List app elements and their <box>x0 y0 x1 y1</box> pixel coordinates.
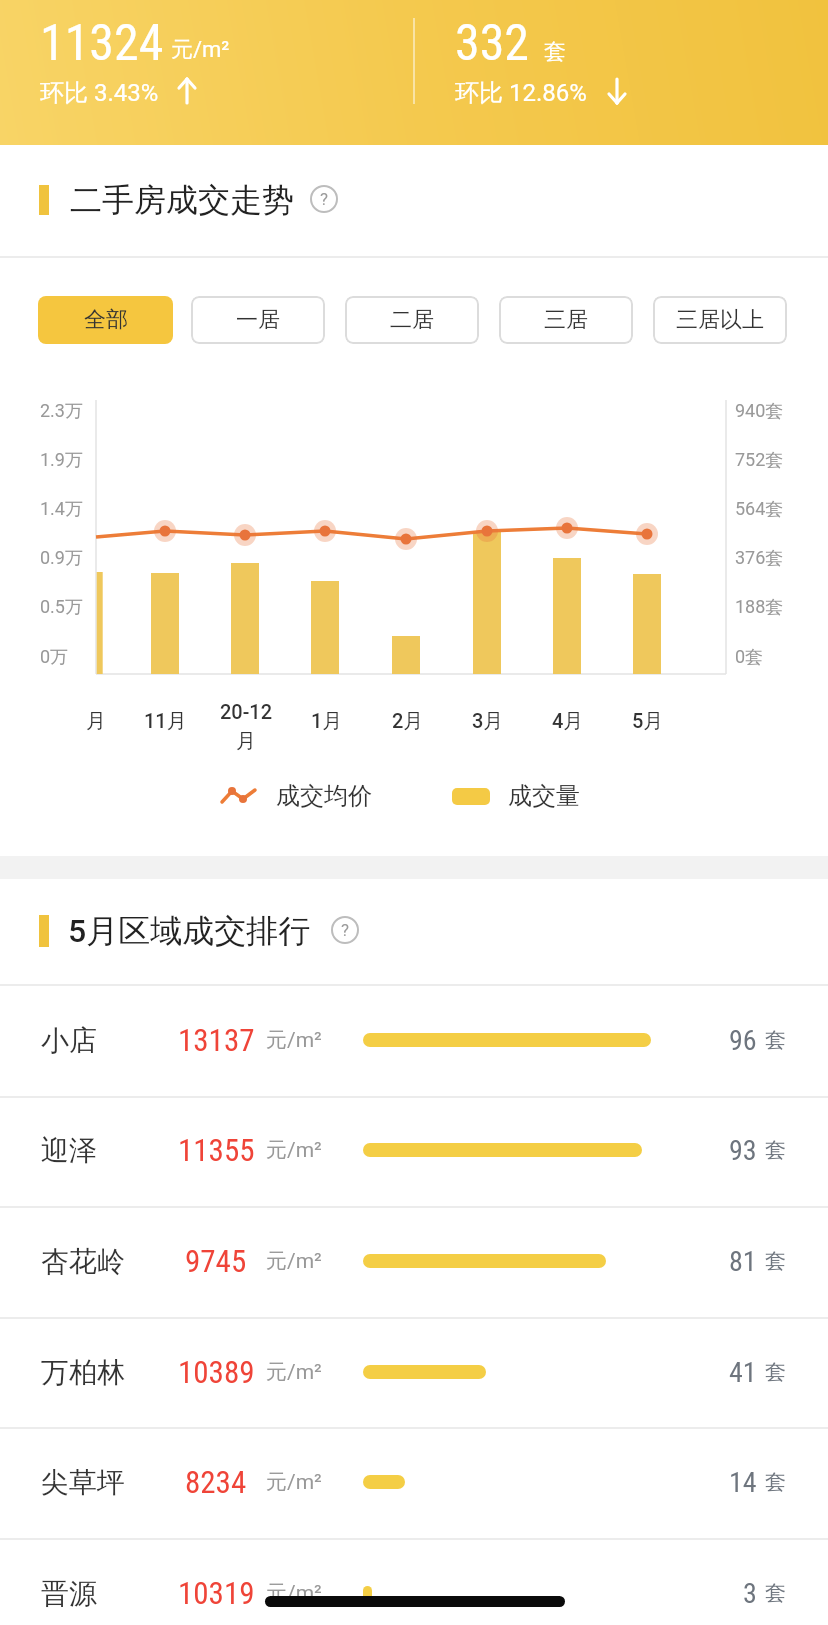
staticText: 小店 <box>41 1023 97 1058</box>
staticText: 564套 <box>735 498 784 521</box>
staticText: 3月 <box>472 709 504 734</box>
staticText: 套 <box>765 1027 786 1053</box>
staticText: 杏花岭 <box>41 1244 125 1279</box>
staticText: 0.9万 <box>40 547 83 570</box>
staticText: 月 <box>236 729 256 754</box>
button[interactable] <box>0 1427 828 1537</box>
staticText: 2月 <box>392 709 424 734</box>
staticText: 套 <box>765 1469 786 1495</box>
button[interactable]: 三居 <box>499 296 633 344</box>
staticText: 元/m² <box>266 1469 322 1495</box>
staticText: 环比 12.86% <box>455 78 587 108</box>
button[interactable]: ? <box>310 185 338 213</box>
staticText: 10319 <box>178 1575 255 1611</box>
staticText: 13137 <box>178 1022 255 1058</box>
staticText: 0.5万 <box>40 596 83 619</box>
staticText: 81 <box>729 1245 757 1278</box>
staticText: 3 <box>743 1577 757 1610</box>
staticText: 11355 <box>178 1132 255 1168</box>
staticText: 晋源 <box>41 1576 97 1611</box>
staticText: 4月 <box>552 709 584 734</box>
button[interactable] <box>0 1317 828 1427</box>
staticText: 11月 <box>144 709 187 734</box>
staticText: 套 <box>765 1248 786 1274</box>
staticText: 二手房成交走势 <box>70 180 294 218</box>
staticText: 环比 3.43% <box>40 78 159 108</box>
staticText: 元/m² <box>266 1359 322 1385</box>
staticText: 二居 <box>390 306 434 334</box>
staticText: 96 <box>729 1024 757 1057</box>
button[interactable]: ? <box>331 916 359 944</box>
button[interactable] <box>0 985 828 1095</box>
staticText: 376套 <box>735 547 784 570</box>
staticText: 332 <box>455 14 530 70</box>
staticText: 20-12 <box>220 700 273 723</box>
staticText: 2.3万 <box>40 400 83 423</box>
button[interactable] <box>0 1538 828 1625</box>
button[interactable] <box>0 1096 828 1206</box>
staticText: 一居 <box>236 306 280 334</box>
staticText: 0套 <box>735 646 764 669</box>
button[interactable]: 全部 <box>38 296 173 344</box>
staticText: 尖草坪 <box>41 1465 125 1500</box>
staticText: 1月 <box>311 709 343 734</box>
button[interactable]: 一居 <box>191 296 325 344</box>
staticText: 14 <box>729 1466 757 1499</box>
staticText: 940套 <box>735 400 784 423</box>
staticText: 1.9万 <box>40 449 83 472</box>
staticText: 套 <box>765 1137 786 1163</box>
button[interactable]: 三居以上 <box>653 296 787 344</box>
staticText: 万柏林 <box>41 1355 125 1390</box>
staticText: 元/m² <box>266 1137 322 1163</box>
staticText: 成交量 <box>508 781 580 811</box>
staticText: 10389 <box>178 1354 255 1390</box>
staticText: 752套 <box>735 449 784 472</box>
staticText: 11324 <box>40 14 164 70</box>
staticText: ? <box>320 189 329 209</box>
staticText: 套 <box>765 1359 786 1385</box>
staticText: 41 <box>729 1356 757 1389</box>
staticText: 元/m² <box>266 1580 322 1606</box>
staticText: 成交均价 <box>276 781 372 811</box>
staticText: 三居 <box>544 306 588 334</box>
staticText: 三居以上 <box>676 306 764 334</box>
staticText: 套 <box>765 1580 786 1606</box>
staticText: 1.4万 <box>40 498 83 521</box>
staticText: 0万 <box>40 646 69 669</box>
button[interactable] <box>0 1206 828 1316</box>
staticText: 元/m² <box>266 1027 322 1053</box>
staticText: 元/m² <box>266 1248 322 1274</box>
staticText: 元/m² <box>171 36 230 64</box>
staticText: 188套 <box>735 596 784 619</box>
staticText: ? <box>341 920 350 940</box>
staticText: 套 <box>544 38 566 66</box>
staticText: 5月 <box>632 709 664 734</box>
staticText: 8234 <box>185 1464 247 1500</box>
staticText: 迎泽 <box>41 1133 97 1168</box>
staticText: 全部 <box>84 306 128 334</box>
staticText: 9745 <box>185 1243 247 1279</box>
button[interactable]: 二居 <box>345 296 479 344</box>
staticText: 月 <box>86 709 106 734</box>
staticText: 5月区域成交排行 <box>68 911 311 949</box>
staticText: 93 <box>729 1134 757 1167</box>
